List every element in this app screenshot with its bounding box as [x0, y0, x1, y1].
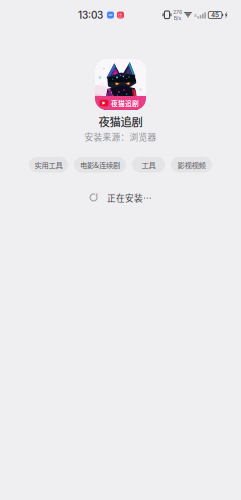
staticText: 夜猫追剧 [111, 98, 139, 108]
staticText: 276 [173, 9, 182, 15]
button[interactable]: 实用工具 [29, 157, 68, 172]
staticText: 安装来源：浏览器 [84, 130, 156, 143]
staticText: B/s [173, 15, 181, 21]
staticText: x [194, 12, 197, 18]
staticText: 电影&连续剧 [80, 159, 120, 170]
staticText: 夜猫追剧 [98, 113, 142, 129]
staticText: 优 [118, 12, 123, 18]
staticText: 13:03 [78, 9, 103, 21]
staticText: 45 [211, 11, 219, 19]
staticText: 正在安装… [107, 191, 152, 204]
staticText: 工具 [141, 159, 155, 170]
button[interactable]: 电影&连续剧 [74, 157, 126, 172]
button[interactable]: 影视视频 [171, 157, 212, 172]
staticText: 影视视频 [177, 159, 205, 170]
button[interactable]: 工具 [132, 157, 165, 172]
staticText: 实用工具 [34, 159, 62, 170]
